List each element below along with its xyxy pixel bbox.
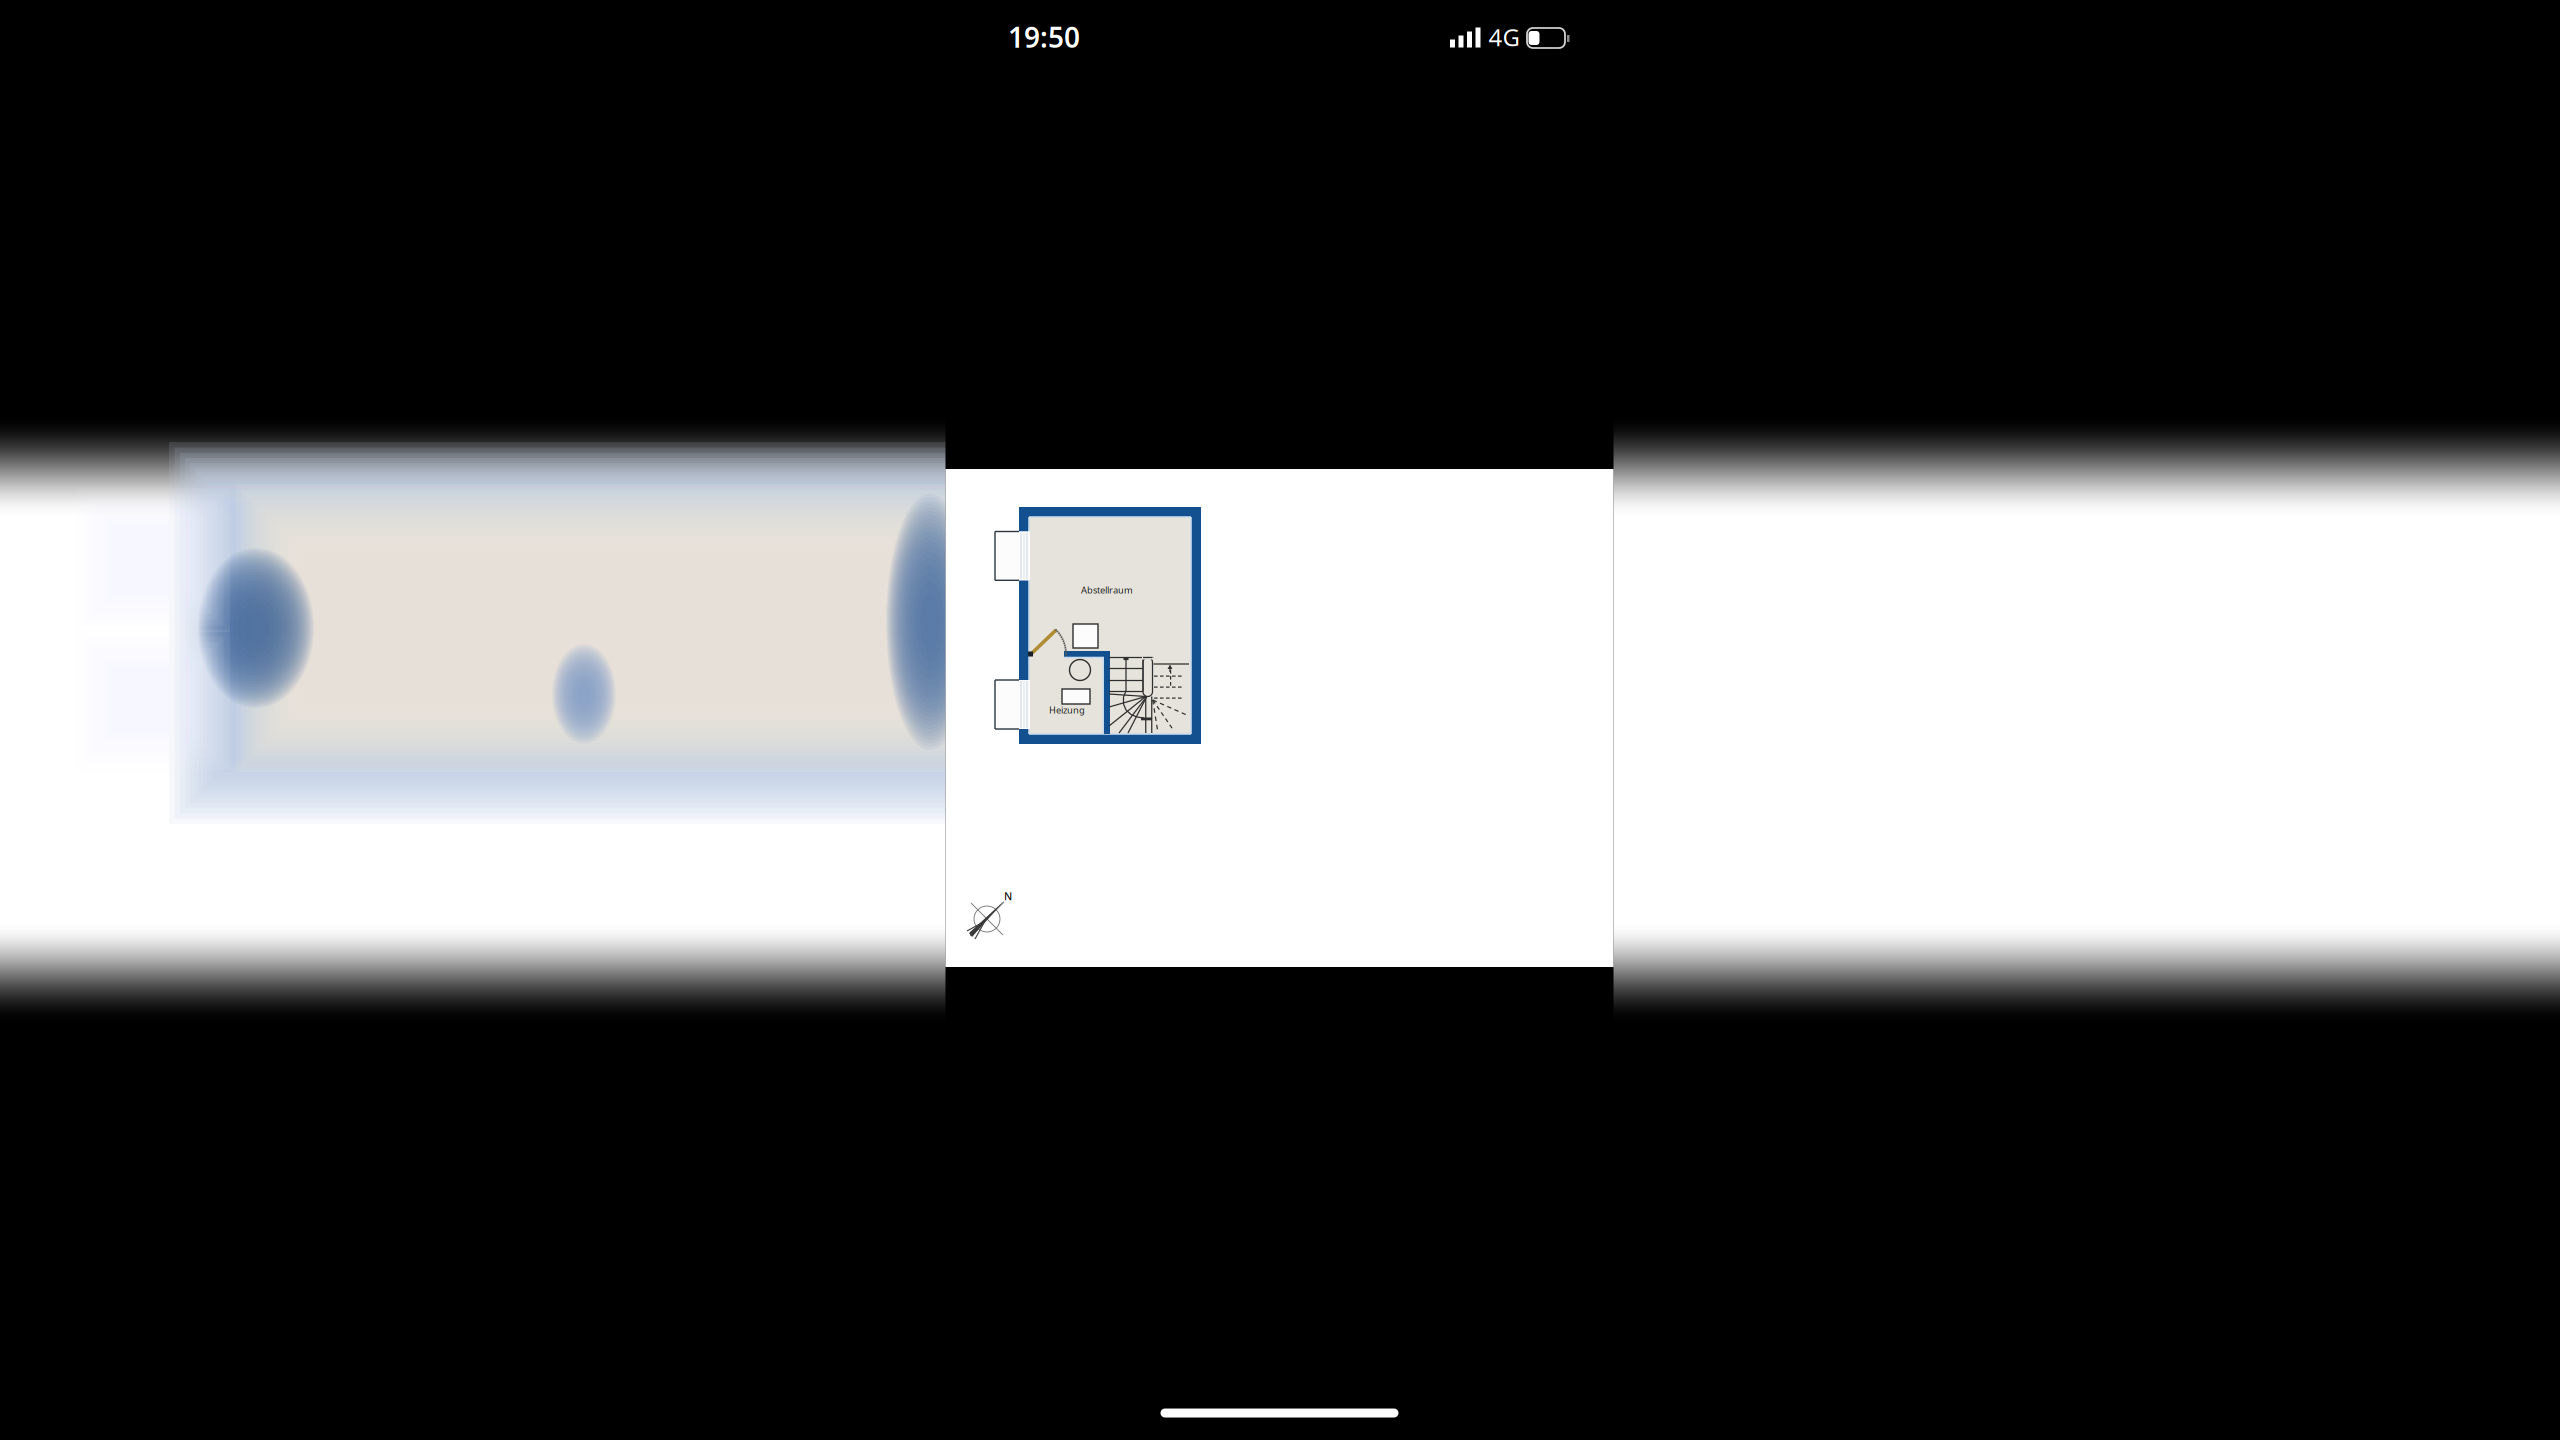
staticText: Abstellraum bbox=[1081, 584, 1133, 596]
staticText: 4G bbox=[1488, 21, 1519, 53]
staticText: Heizung bbox=[1049, 704, 1085, 716]
staticText: 19:50 bbox=[1008, 18, 1080, 56]
staticText: N bbox=[1004, 889, 1012, 903]
button[interactable]: Floor plan image bbox=[0, 0, 2560, 1440]
